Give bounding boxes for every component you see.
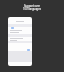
button[interactable] bbox=[8, 17, 32, 66]
staticText: Support over 100 languages bbox=[23, 4, 41, 10]
